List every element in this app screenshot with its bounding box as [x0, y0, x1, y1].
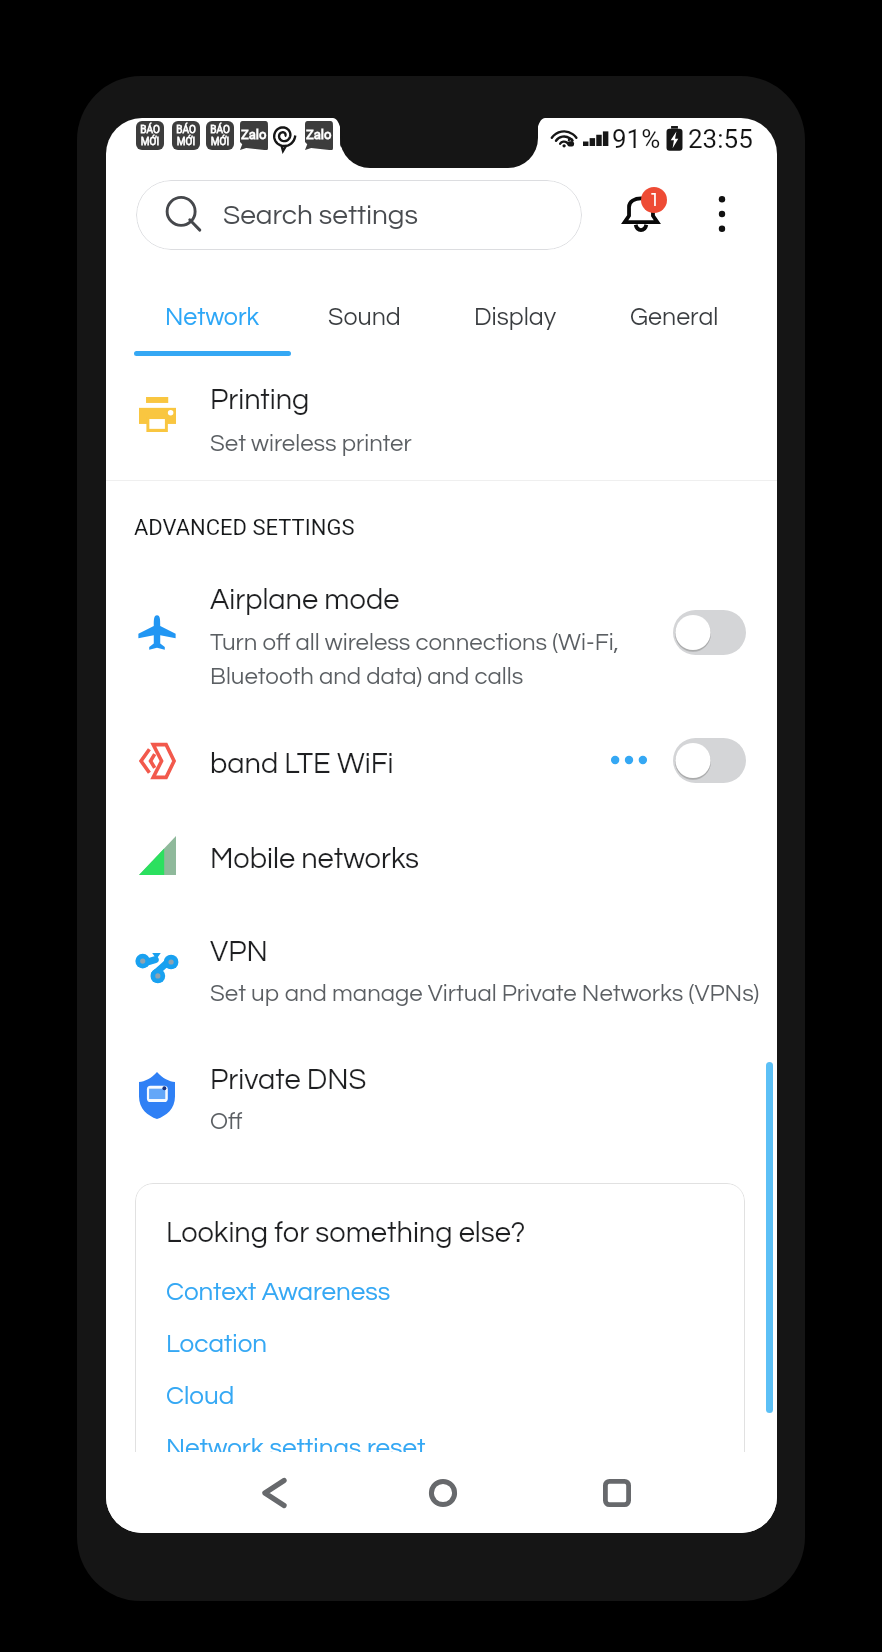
staticText: Search settings: [223, 201, 418, 230]
staticText: Zalo: [306, 127, 332, 142]
staticText: Location: [166, 1331, 268, 1358]
button[interactable]: Location: [166, 1331, 268, 1358]
staticText: 1: [649, 190, 660, 210]
staticText: Off: [210, 1109, 243, 1134]
staticText: Set wireless printer: [210, 431, 412, 456]
button[interactable]: Display: [451, 285, 579, 349]
staticText: Looking for something else?: [166, 1218, 526, 1248]
staticText: Mobile networks: [210, 844, 420, 874]
staticText: band LTE WiFi: [210, 749, 394, 779]
button[interactable]: [106, 558, 777, 698]
button[interactable]: Toggle: [673, 610, 746, 655]
button[interactable]: Toggle: [673, 738, 746, 783]
button[interactable]: Sound: [304, 285, 425, 349]
button[interactable]: [106, 918, 777, 1043]
staticText: 23:55: [688, 124, 753, 154]
button[interactable]: Search settings: [136, 180, 582, 250]
button[interactable]: General: [605, 285, 743, 349]
staticText: Network settings reset: [166, 1435, 426, 1462]
staticText: Turn off all wireless connections (Wi-Fi…: [210, 630, 619, 689]
staticText: ADVANCED SETTINGS: [134, 515, 355, 541]
staticText: Network: [165, 304, 260, 330]
button[interactable]: Network: [142, 285, 283, 349]
button[interactable]: Notifications: [608, 182, 672, 246]
staticText: BÁO MỚI: [210, 124, 230, 147]
button[interactable]: Network settings reset: [166, 1435, 426, 1462]
staticText: Airplane mode: [210, 585, 400, 615]
button[interactable]: [106, 723, 777, 815]
staticText: Set up and manage Virtual Private Networ…: [210, 981, 760, 1006]
button[interactable]: [106, 370, 777, 480]
button[interactable]: [106, 823, 777, 913]
staticText: Display: [474, 304, 557, 330]
button[interactable]: Context Awareness: [166, 1279, 391, 1306]
staticText: Zalo: [241, 127, 267, 142]
button[interactable]: Back: [246, 1465, 302, 1521]
button[interactable]: Recents: [589, 1465, 645, 1521]
staticText: Sound: [328, 304, 401, 330]
staticText: VPN: [210, 937, 268, 967]
staticText: Cloud: [166, 1383, 235, 1410]
staticText: Printing: [210, 385, 310, 415]
staticText: BÁO MỚI: [176, 124, 196, 147]
staticText: BÁO MỚI: [140, 124, 160, 147]
staticText: General: [630, 304, 719, 330]
button[interactable]: More options: [694, 186, 750, 242]
staticText: Private DNS: [210, 1065, 367, 1095]
button[interactable]: Home: [415, 1465, 471, 1521]
button[interactable]: [106, 1048, 777, 1173]
staticText: 91%: [612, 124, 661, 154]
staticText: Context Awareness: [166, 1279, 391, 1306]
button[interactable]: Cloud: [166, 1383, 235, 1410]
